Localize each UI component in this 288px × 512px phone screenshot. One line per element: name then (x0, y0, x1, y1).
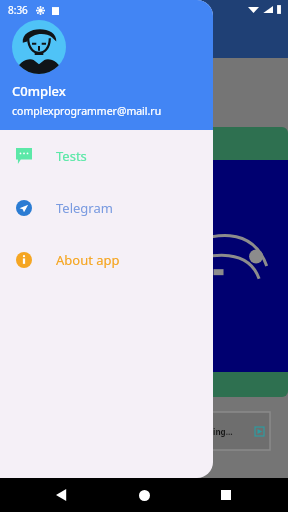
staticText: Tests (56, 147, 87, 165)
button[interactable]: Profile photo (12, 20, 66, 74)
button[interactable]: Back (42, 478, 82, 512)
staticText: complexprogrammer@mail.ru (12, 104, 162, 118)
button[interactable] (212, 127, 288, 397)
staticText: ing… (213, 426, 233, 437)
button[interactable]: Telegram (0, 194, 213, 222)
button[interactable]: Tests (0, 142, 213, 170)
staticText: 8:36 (8, 3, 28, 17)
button[interactable]: ing… (212, 412, 270, 450)
staticText: C0mplex (12, 82, 66, 100)
staticText: Telegram (56, 199, 113, 217)
button[interactable]: Home (124, 478, 164, 512)
button[interactable]: About app (0, 246, 213, 274)
button[interactable]: Recent apps (206, 478, 246, 512)
staticText: About app (56, 251, 120, 269)
